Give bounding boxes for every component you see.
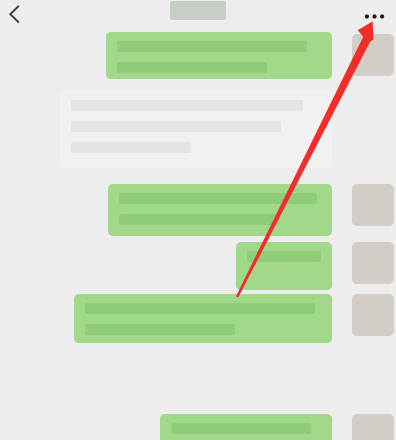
button[interactable]: More options [351,0,396,25]
button[interactable]: Back [0,0,46,25]
